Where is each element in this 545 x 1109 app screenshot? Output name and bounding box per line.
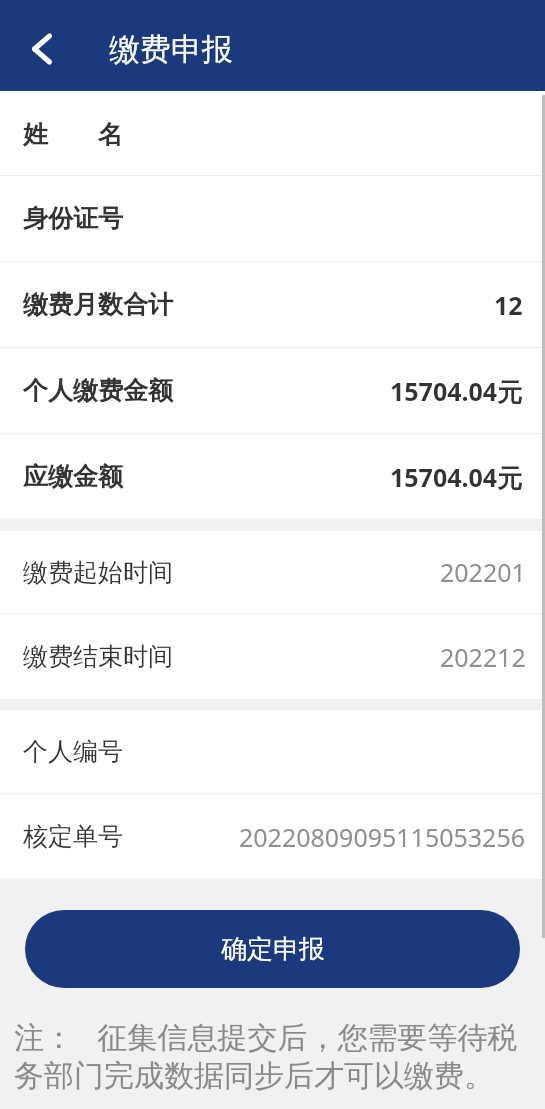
staticText: 15704.04元 (390, 460, 523, 494)
staticText: 202212 (440, 640, 526, 674)
staticText: 确定申报 (221, 933, 325, 966)
staticText: 15704.04元 (390, 374, 523, 408)
staticText: 注： 征集信息提交后，您需要等待税务部门完成数据同步后才可以缴费。 (14, 1016, 539, 1095)
staticText: 12 (494, 288, 523, 322)
button[interactable]: 应缴金额 (0, 434, 545, 519)
button[interactable]: 缴费起始时间 (0, 531, 545, 613)
button[interactable]: Back (18, 25, 66, 73)
staticText: 缴费申报 (109, 30, 233, 69)
staticText: 缴费起始时间 (23, 557, 173, 588)
button[interactable]: 缴费月数合计 (0, 262, 545, 347)
staticText: 缴费结束时间 (23, 641, 173, 672)
button[interactable]: 身份证号 (0, 176, 545, 261)
button[interactable]: 缴费结束时间 (0, 614, 545, 699)
staticText: 202201 (440, 555, 526, 589)
button[interactable]: 确定申报 (25, 910, 520, 988)
button[interactable]: 个人缴费金额 (0, 348, 545, 433)
staticText: 缴费月数合计 (23, 289, 173, 320)
staticText: 应缴金额 (23, 461, 123, 492)
staticText: 20220809095115053256 (239, 820, 526, 854)
staticText: 姓 名 (23, 116, 123, 150)
staticText: 核定单号 (23, 821, 123, 852)
staticText: 个人编号 (23, 736, 123, 767)
button[interactable]: 核定单号 (0, 794, 545, 879)
staticText: 身份证号 (23, 203, 123, 234)
button[interactable]: 姓 名 (0, 91, 545, 175)
staticText: 个人缴费金额 (23, 375, 173, 406)
button[interactable]: 个人编号 (0, 710, 545, 793)
